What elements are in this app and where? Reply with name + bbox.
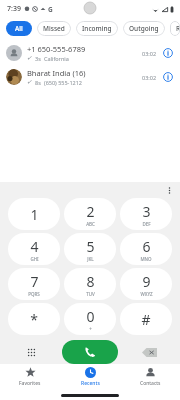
staticText: GHI <box>30 256 39 262</box>
staticText: 7:39 <box>7 4 21 14</box>
staticText: Incoming <box>82 24 112 33</box>
staticText: 6 <box>142 237 151 256</box>
staticText: 0 <box>86 307 95 326</box>
button[interactable]: 6 <box>120 233 172 265</box>
staticText: # <box>141 310 151 329</box>
button[interactable]: Keypad <box>0 340 62 364</box>
staticText: Recents <box>81 380 100 387</box>
button[interactable]: 3 <box>120 198 172 230</box>
staticText: Missed <box>43 24 65 33</box>
button[interactable]: Call <box>62 340 118 364</box>
staticText: +1 650-555-6789 <box>27 44 86 54</box>
staticText: 4 <box>30 237 39 256</box>
staticText: DEF <box>142 221 151 227</box>
staticText: + <box>89 326 92 332</box>
button[interactable]: All <box>6 21 32 36</box>
staticText: G <box>48 5 53 14</box>
staticText: 03:02 <box>142 50 157 57</box>
staticText: ABC <box>86 221 95 227</box>
button[interactable]: # <box>120 303 172 335</box>
staticText: JKL <box>87 256 94 262</box>
button[interactable]: 1 <box>8 198 60 230</box>
button[interactable]: Contacts <box>120 364 180 390</box>
staticText: 1 <box>30 205 39 224</box>
button[interactable]: 5 <box>64 233 116 265</box>
button[interactable]: Outgoing <box>123 21 165 36</box>
staticText: TUV <box>86 291 95 297</box>
staticText: WXYZ <box>140 291 153 297</box>
button[interactable]: Incoming <box>76 21 118 36</box>
button[interactable]: 0 <box>64 303 116 335</box>
button[interactable]: 2 <box>64 198 116 230</box>
staticText: 5 <box>86 237 95 256</box>
staticText: (650) 555-1212 <box>44 79 82 86</box>
staticText: 3s <box>35 55 41 62</box>
button[interactable]: More options <box>163 184 175 196</box>
staticText: Outgoing <box>129 24 159 33</box>
button[interactable]: Missed <box>37 21 71 36</box>
button[interactable]: Recents <box>60 364 120 390</box>
button[interactable]: Call details <box>162 71 174 83</box>
button[interactable]: 4 <box>8 233 60 265</box>
button[interactable]: +1 650-555-6789 <box>0 41 180 65</box>
staticText: 8s <box>35 79 41 86</box>
button[interactable]: Call details <box>162 47 174 59</box>
button[interactable]: Favorites <box>0 364 60 390</box>
staticText: 8 <box>86 272 95 291</box>
staticText: All <box>15 24 23 33</box>
staticText: Contacts <box>140 380 161 387</box>
staticText: PQRS <box>28 291 40 297</box>
button[interactable]: 7 <box>8 268 60 300</box>
staticText: MNO <box>140 256 152 262</box>
staticText: California <box>44 55 69 62</box>
button[interactable]: Backspace <box>118 340 180 364</box>
staticText: 7 <box>30 272 39 291</box>
staticText: Favorites <box>19 380 41 387</box>
staticText: * <box>30 310 38 329</box>
button[interactable]: Bharat India (16) <box>0 65 180 89</box>
button[interactable]: 8 <box>64 268 116 300</box>
button[interactable]: 9 <box>120 268 172 300</box>
staticText: 9 <box>142 272 151 291</box>
button[interactable]: Rejected <box>170 21 180 36</box>
staticText: 2 <box>86 202 95 221</box>
staticText: 03:02 <box>142 74 157 81</box>
staticText: 3 <box>142 202 151 221</box>
button[interactable]: * <box>8 303 60 335</box>
staticText: Bharat India (16) <box>27 68 86 78</box>
